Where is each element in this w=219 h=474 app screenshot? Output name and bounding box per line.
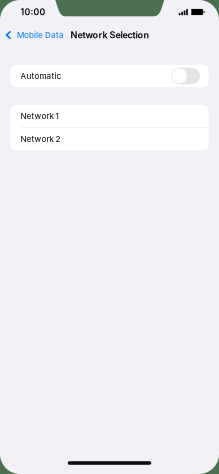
staticText: Network 1 bbox=[21, 111, 59, 121]
staticText: Mobile Data bbox=[17, 30, 64, 40]
staticText: Network Selection bbox=[71, 29, 150, 40]
button[interactable]: Mobile Data bbox=[0, 24, 69, 46]
staticText: Automatic bbox=[21, 71, 62, 81]
button[interactable]: Automatic bbox=[10, 65, 209, 87]
staticText: 10:00 bbox=[20, 7, 45, 17]
button[interactable]: Network 1 bbox=[10, 105, 209, 127]
staticText: Network 2 bbox=[21, 134, 61, 144]
button[interactable]: Network 2 bbox=[10, 128, 209, 150]
